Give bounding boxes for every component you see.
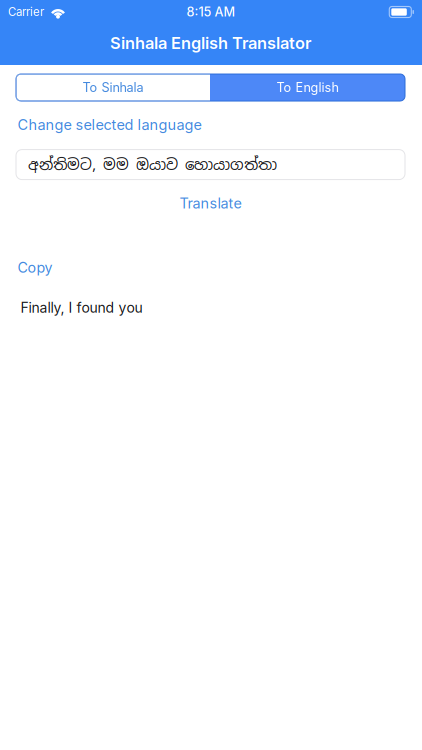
staticText: Change selected language [17, 116, 201, 134]
button[interactable]: Change selected language [16, 116, 201, 134]
button[interactable]: To Sinhala [16, 74, 210, 101]
staticText: Sinhala English Translator [110, 33, 312, 53]
button[interactable]: අන්තිමට, මම ඔයාව හොයාගත්තා [16, 150, 405, 180]
staticText: To English [276, 80, 338, 95]
staticText: අන්තිමට, මම ඔයාව හොයාගත්තා [28, 155, 277, 174]
button[interactable]: Translate [179, 195, 241, 212]
staticText: Copy [17, 259, 52, 276]
button[interactable]: Copy [16, 259, 52, 276]
staticText: Carrier [8, 5, 44, 19]
button[interactable]: To English [210, 74, 405, 101]
staticText: 8:15 AM [186, 4, 235, 20]
staticText: Translate [179, 195, 241, 212]
staticText: Finally, I found you [20, 299, 142, 316]
staticText: To Sinhala [82, 80, 143, 95]
